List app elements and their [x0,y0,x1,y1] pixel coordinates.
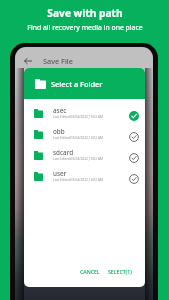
other: Back [24,57,32,65]
staticText: CANCEL [80,268,100,275]
button[interactable]: SELECT(1) [105,265,135,278]
button[interactable]: asec [24,103,145,124]
button[interactable]: CANCEL [77,265,103,278]
staticText: Last Edited:05/04/2022,10:02 AM [53,157,103,161]
staticText: Last Edited:05/04/2022,10:02 AM [53,115,103,119]
staticText: Save File [43,56,73,66]
staticText: SELECT(1) [108,268,132,275]
staticText: Find all recovery media in one place [27,23,143,32]
button[interactable]: user [24,166,145,187]
button[interactable]: obb [24,124,145,145]
staticText: sdcard [53,148,74,157]
button[interactable]: sdcard [24,145,145,166]
staticText: Select a Folder [51,79,103,89]
staticText: asec [53,106,67,115]
staticText: Last Edited:05/04/2022,10:02 AM [53,136,103,140]
staticText: user [53,169,67,178]
staticText: Last Edited:05/04/2022,10:02 AM [53,178,103,182]
staticText: Save with path [47,6,123,20]
staticText: obb [53,127,65,136]
